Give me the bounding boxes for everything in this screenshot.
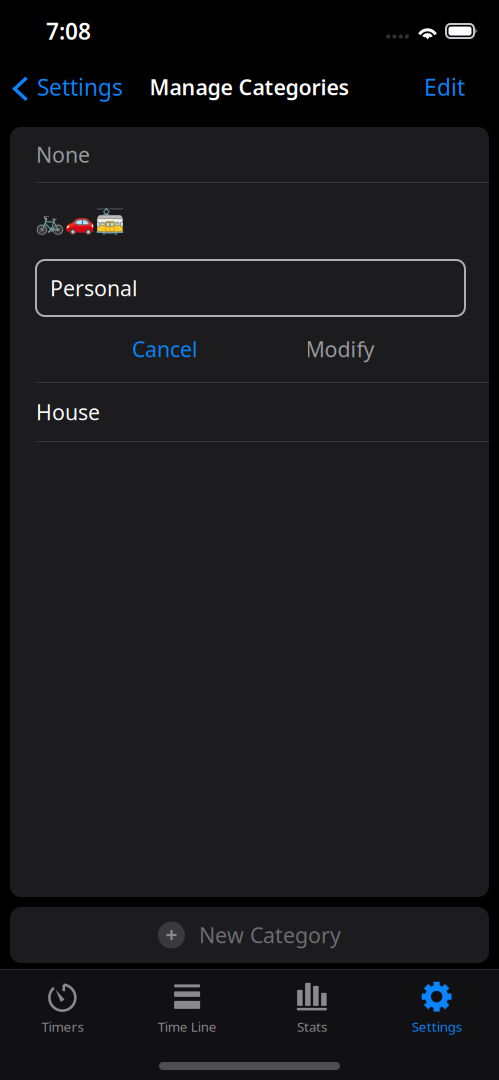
staticText: House	[36, 398, 100, 426]
staticText: 7:08	[46, 16, 91, 46]
button[interactable]: 🚲🚗🚋	[10, 183, 489, 260]
staticText: None	[36, 140, 90, 169]
button[interactable]: Stats	[249, 981, 374, 1035]
staticText: 🚲🚗🚋	[35, 208, 125, 235]
staticText: Settings	[412, 1018, 462, 1035]
staticText: Cancel	[132, 335, 198, 363]
staticText: Personal	[50, 274, 138, 302]
button[interactable]: House	[10, 383, 489, 441]
button[interactable]: Modify	[270, 316, 410, 382]
staticText: Time Line	[158, 1018, 217, 1035]
button[interactable]: New Category	[10, 907, 489, 963]
staticText: Stats	[297, 1018, 327, 1035]
button[interactable]: Edit	[410, 65, 499, 109]
button[interactable]: Settings	[0, 65, 131, 109]
staticText: Edit	[424, 72, 465, 102]
button[interactable]: Time Line	[125, 981, 250, 1035]
staticText: Timers	[41, 1018, 83, 1035]
staticText: Manage Categories	[149, 73, 349, 101]
button[interactable]: Timers	[0, 981, 125, 1035]
staticText: New Category	[199, 921, 341, 949]
staticText: Settings	[37, 72, 123, 102]
button[interactable]: None	[10, 127, 489, 182]
button[interactable]: Cancel	[95, 316, 235, 382]
button[interactable]: Settings	[374, 981, 499, 1035]
staticText: Modify	[305, 335, 374, 363]
